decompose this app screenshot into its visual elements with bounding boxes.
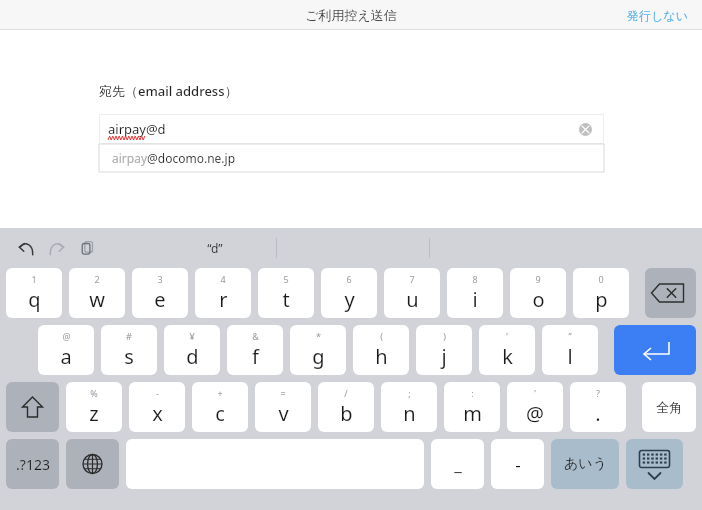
staticText: ; [408,387,411,399]
button[interactable]: airpay@docomo.ne.jp [99,144,604,172]
button[interactable]: * [290,325,346,375]
staticText: k [502,343,513,370]
staticText: ( [380,330,383,342]
button[interactable]: 発行しない [623,5,692,26]
button[interactable]: = [255,382,311,432]
button[interactable]: Paste [76,236,100,260]
button[interactable]: あいう [551,439,619,489]
staticText: x [152,400,163,427]
button[interactable]: - [129,382,185,432]
staticText: ’ [534,387,536,399]
button[interactable]: airpay@d [99,114,604,144]
button[interactable]: 4 [195,268,251,318]
staticText: “d” [207,240,223,256]
button[interactable]: Switch keyboard language [66,439,119,489]
staticText: c [215,400,225,427]
button[interactable]: Hide keyboard [626,439,683,489]
button[interactable]: - [491,439,544,489]
staticText: u [406,286,419,313]
button[interactable]: Backspace [645,268,696,318]
button[interactable]: / [318,382,374,432]
button[interactable]: ’ [507,382,563,432]
staticText: 3 [157,273,163,285]
staticText: + [217,387,223,399]
button[interactable]: Redo [45,236,69,260]
button[interactable]: 全角 [642,382,696,432]
staticText: 宛先（email address） [99,82,238,100]
staticText: h [375,343,388,370]
staticText: y [344,286,355,313]
staticText: - [156,387,159,399]
staticText: 2 [94,273,100,285]
button[interactable]: & [227,325,283,375]
button[interactable]: 0 [573,268,629,318]
staticText: = [280,387,286,399]
staticText: v [278,400,289,427]
staticText: o [532,286,545,313]
button[interactable]: Return [614,325,696,375]
button[interactable]: 7 [384,268,440,318]
button[interactable]: 1 [6,268,62,318]
staticText: 1 [31,273,37,285]
staticText: z [89,400,99,427]
staticText: i [472,286,478,313]
staticText: * [316,330,321,342]
button[interactable]: 3 [132,268,188,318]
staticText: m [463,400,482,427]
staticText: j [441,343,447,370]
button[interactable]: _ [431,439,484,489]
staticText: : [471,387,474,399]
button[interactable]: 5 [258,268,314,318]
staticText: n [403,400,416,427]
staticText: / [344,387,348,399]
button[interactable]: ( [353,325,409,375]
button[interactable]: ” [542,325,598,375]
button[interactable]: ¥ [164,325,220,375]
staticText: q [28,286,41,313]
button[interactable]: “d” [155,231,275,265]
staticText: l [567,343,573,370]
button[interactable]: ; [381,382,437,432]
button[interactable]: Clear text [576,120,594,138]
button[interactable]: ? [570,382,626,432]
button[interactable]: 6 [321,268,377,318]
button[interactable]: ) [416,325,472,375]
staticText: 7 [409,273,415,285]
button[interactable]: .?123 [6,439,59,489]
button[interactable]: % [66,382,122,432]
staticText: g [312,343,325,370]
staticText: a [60,343,72,370]
staticText: ? [596,387,600,399]
staticText: あいう [564,455,607,473]
button[interactable]: 2 [69,268,125,318]
staticText: 全角 [656,399,682,415]
staticText: ’ [506,330,508,342]
staticText: .?123 [16,455,50,474]
staticText: . [595,400,601,427]
staticText: t [282,286,290,313]
staticText: _ [454,453,462,476]
staticText: w [89,286,105,313]
staticText: 4 [220,273,226,285]
staticText: ¥ [189,330,195,342]
button[interactable]: # [101,325,157,375]
staticText: d [186,343,199,370]
staticText: 0 [598,273,604,285]
staticText: ” [568,330,572,342]
staticText: airpay@d [108,120,166,138]
staticText: b [340,400,353,427]
button[interactable]: + [192,382,248,432]
button[interactable]: Shift [6,382,59,432]
button[interactable]: 8 [447,268,503,318]
button[interactable]: Undo [14,236,38,260]
staticText: 9 [535,273,541,285]
staticText: 発行しない [627,8,688,23]
button[interactable]: 9 [510,268,566,318]
button[interactable]: ’ [479,325,535,375]
button[interactable]: @ [38,325,94,375]
staticText: p [595,286,608,313]
staticText: f [252,343,259,370]
staticText: @ [62,330,71,342]
button[interactable]: : [444,382,500,432]
